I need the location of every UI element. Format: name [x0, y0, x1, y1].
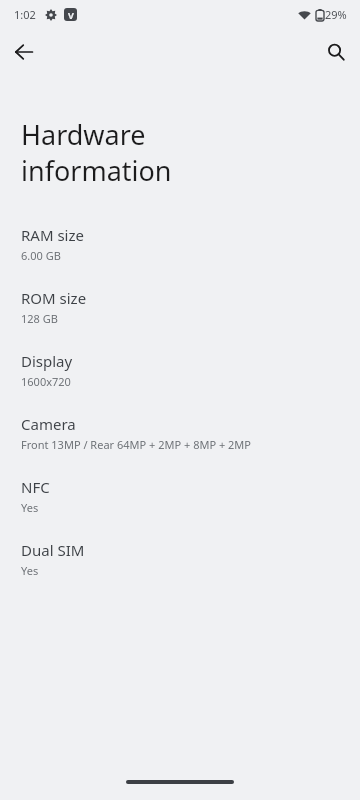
staticText: 128 GB — [21, 311, 58, 326]
button[interactable]: RAM size — [0, 225, 360, 288]
button[interactable]: Camera — [0, 414, 360, 477]
staticText: Front 13MP / Rear 64MP + 2MP + 8MP + 2MP — [21, 437, 251, 452]
staticText: 29% — [325, 7, 347, 22]
staticText: ROM size — [21, 288, 87, 308]
staticText: Yes — [21, 563, 39, 578]
staticText: Dual SIM — [21, 540, 85, 560]
button[interactable]: NFC — [0, 477, 360, 540]
button[interactable]: Back — [8, 36, 40, 68]
staticText: 1600x720 — [21, 374, 71, 389]
staticText: Camera — [21, 414, 76, 434]
staticText: Yes — [21, 500, 39, 515]
staticText: V — [68, 9, 74, 21]
staticText: NFC — [21, 477, 50, 497]
staticText: Display — [21, 351, 73, 371]
button[interactable]: Search — [320, 36, 352, 68]
button[interactable]: Dual SIM — [0, 540, 360, 603]
button[interactable]: ROM size — [0, 288, 360, 351]
staticText: Hardware information — [21, 116, 172, 189]
staticText: RAM size — [21, 225, 84, 245]
staticText: 1:02 — [14, 7, 36, 22]
button[interactable]: Display — [0, 351, 360, 414]
staticText: 6.00 GB — [21, 248, 61, 263]
